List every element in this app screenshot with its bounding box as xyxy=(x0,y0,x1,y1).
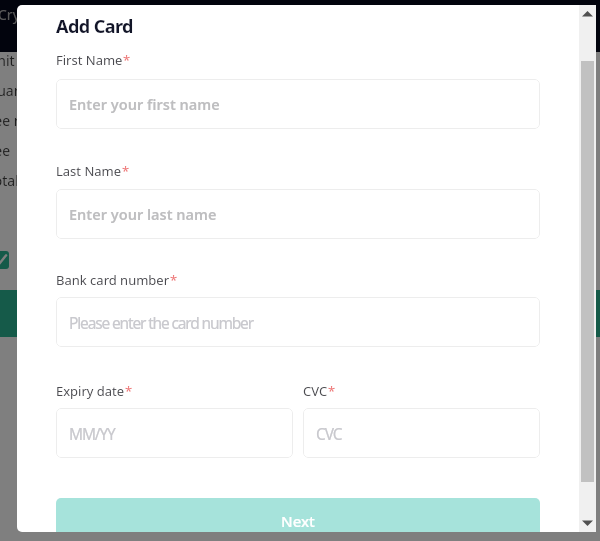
button[interactable]: Next xyxy=(56,498,540,532)
staticText: Total xyxy=(0,171,19,190)
staticText: Bank card number xyxy=(56,271,170,289)
staticText: MM/YY xyxy=(69,423,115,444)
staticText: First Name xyxy=(56,51,123,69)
button[interactable]: Please enter the card number xyxy=(56,297,540,347)
staticText: * xyxy=(122,162,130,180)
staticText: Expiry date xyxy=(56,382,125,400)
staticText: Next xyxy=(281,511,315,531)
staticText: * xyxy=(123,51,131,69)
staticText: * xyxy=(328,382,336,400)
staticText: Last Name xyxy=(56,162,122,180)
staticText: Enter your last name xyxy=(69,204,217,224)
button[interactable]: Scroll xyxy=(579,5,596,532)
button[interactable]: MM/YY xyxy=(56,408,293,458)
staticText: Please enter the card number xyxy=(69,312,253,333)
staticText: Fee xyxy=(0,141,11,160)
staticText: * xyxy=(125,382,133,400)
staticText: Guarantee xyxy=(0,81,57,100)
staticText: * xyxy=(170,271,178,289)
staticText: Enter your first name xyxy=(69,94,220,114)
button[interactable]: Enter your last name xyxy=(56,189,540,239)
staticText: Unit xyxy=(0,51,15,70)
staticText: Crypto xyxy=(0,5,42,24)
staticText: Fee rate xyxy=(0,111,41,130)
staticText: Add Card xyxy=(56,14,133,39)
button[interactable]: Enter your first name xyxy=(56,79,540,129)
button[interactable]: CVC xyxy=(303,408,540,458)
staticText: CVC xyxy=(303,382,328,400)
staticText: CVC xyxy=(316,423,342,444)
